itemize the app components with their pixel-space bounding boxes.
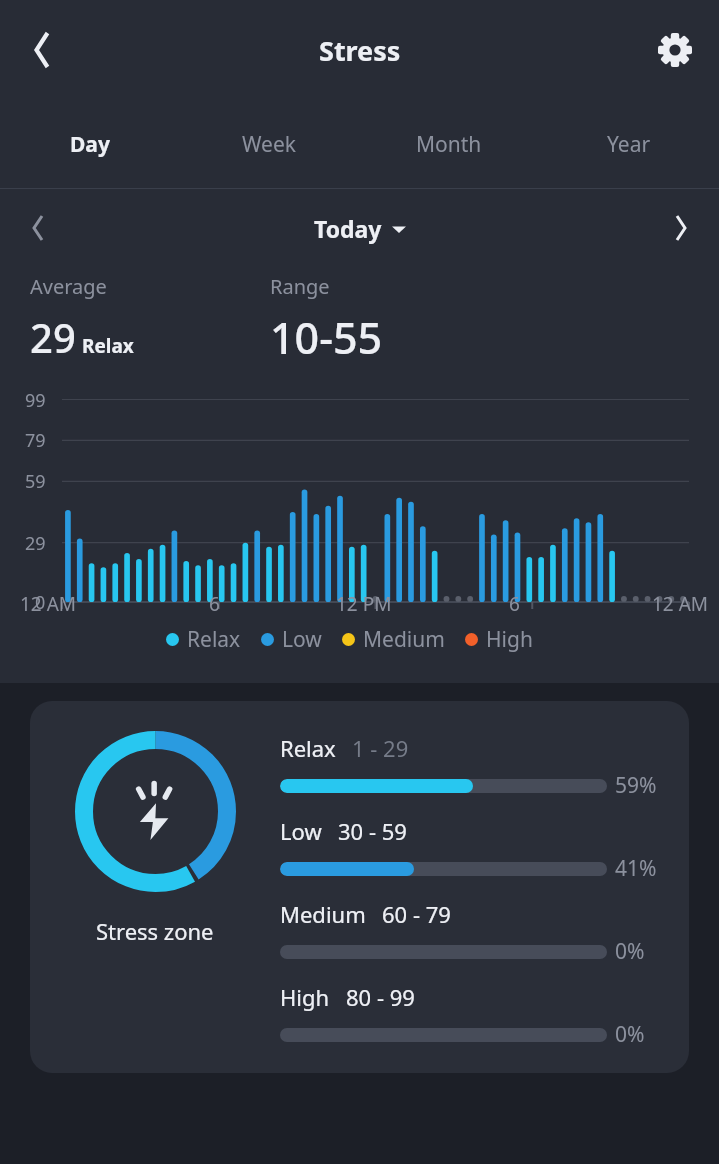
- staticText: 99: [25, 388, 46, 413]
- staticText: Relax: [82, 333, 134, 359]
- staticText: 12 AM: [20, 591, 77, 617]
- staticText: 80 - 99: [346, 982, 415, 1012]
- staticText: 1 - 29: [352, 733, 409, 763]
- button[interactable]: Stress zone: [30, 701, 689, 1073]
- staticText: Day: [70, 130, 110, 159]
- staticText: Stress zone: [96, 916, 214, 946]
- staticText: High: [280, 982, 330, 1012]
- button[interactable]: Month: [359, 100, 539, 188]
- staticText: 6: [209, 591, 220, 617]
- staticText: 0%: [615, 937, 645, 966]
- button[interactable]: Day: [0, 100, 179, 188]
- staticText: 79: [25, 428, 46, 453]
- staticText: 0: [35, 590, 46, 615]
- staticText: 12 PM: [336, 591, 392, 617]
- staticText: 59%: [615, 771, 657, 800]
- button[interactable]: Back: [14, 22, 70, 78]
- button[interactable]: Next day: [655, 202, 707, 254]
- staticText: 41%: [615, 854, 657, 883]
- staticText: Relax: [187, 625, 241, 654]
- staticText: Stress: [319, 32, 401, 69]
- staticText: 6: [509, 591, 520, 617]
- button[interactable]: Settings: [647, 22, 703, 78]
- staticText: 12 AM: [652, 591, 709, 617]
- staticText: 60 - 79: [382, 899, 451, 929]
- staticText: Medium: [280, 899, 366, 929]
- staticText: 59: [25, 469, 46, 494]
- button[interactable]: Year: [539, 100, 719, 188]
- staticText: Year: [607, 130, 651, 159]
- staticText: Month: [416, 130, 482, 159]
- staticText: 29: [30, 310, 76, 364]
- staticText: Average: [30, 273, 107, 300]
- staticText: 10-55: [270, 308, 383, 367]
- staticText: Low: [282, 625, 322, 654]
- button[interactable]: Today: [314, 213, 406, 244]
- staticText: Today: [314, 213, 382, 244]
- staticText: Range: [270, 273, 330, 300]
- staticText: Low: [280, 816, 322, 846]
- button[interactable]: Week: [179, 100, 359, 188]
- button[interactable]: Previous day: [12, 202, 64, 254]
- staticText: 30 - 59: [338, 816, 407, 846]
- staticText: Relax: [280, 733, 336, 763]
- staticText: 29: [25, 531, 46, 556]
- staticText: Week: [242, 130, 297, 159]
- staticText: High: [486, 625, 533, 654]
- staticText: 0%: [615, 1020, 645, 1049]
- staticText: Medium: [363, 625, 445, 654]
